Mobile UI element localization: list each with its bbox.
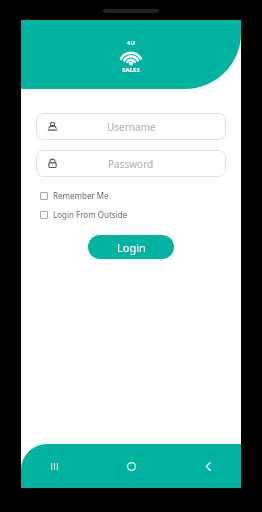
- button[interactable]: Recent apps: [43, 455, 65, 477]
- button[interactable]: Back: [197, 455, 219, 477]
- staticText: 4U: [127, 39, 135, 47]
- staticText: Login From Outside: [53, 209, 128, 220]
- staticText: Password: [108, 157, 154, 171]
- staticText: Login: [117, 240, 146, 255]
- staticText: Username: [107, 120, 156, 134]
- button[interactable]: Home: [120, 455, 142, 477]
- staticText: Remember Me: [53, 190, 109, 201]
- button[interactable]: Login From Outside: [40, 209, 128, 220]
- button[interactable]: Remember Me: [40, 190, 109, 201]
- button[interactable]: Password: [36, 150, 226, 177]
- button[interactable]: Login: [88, 235, 174, 259]
- button[interactable]: Username: [36, 113, 226, 140]
- staticText: SALES: [122, 66, 140, 74]
